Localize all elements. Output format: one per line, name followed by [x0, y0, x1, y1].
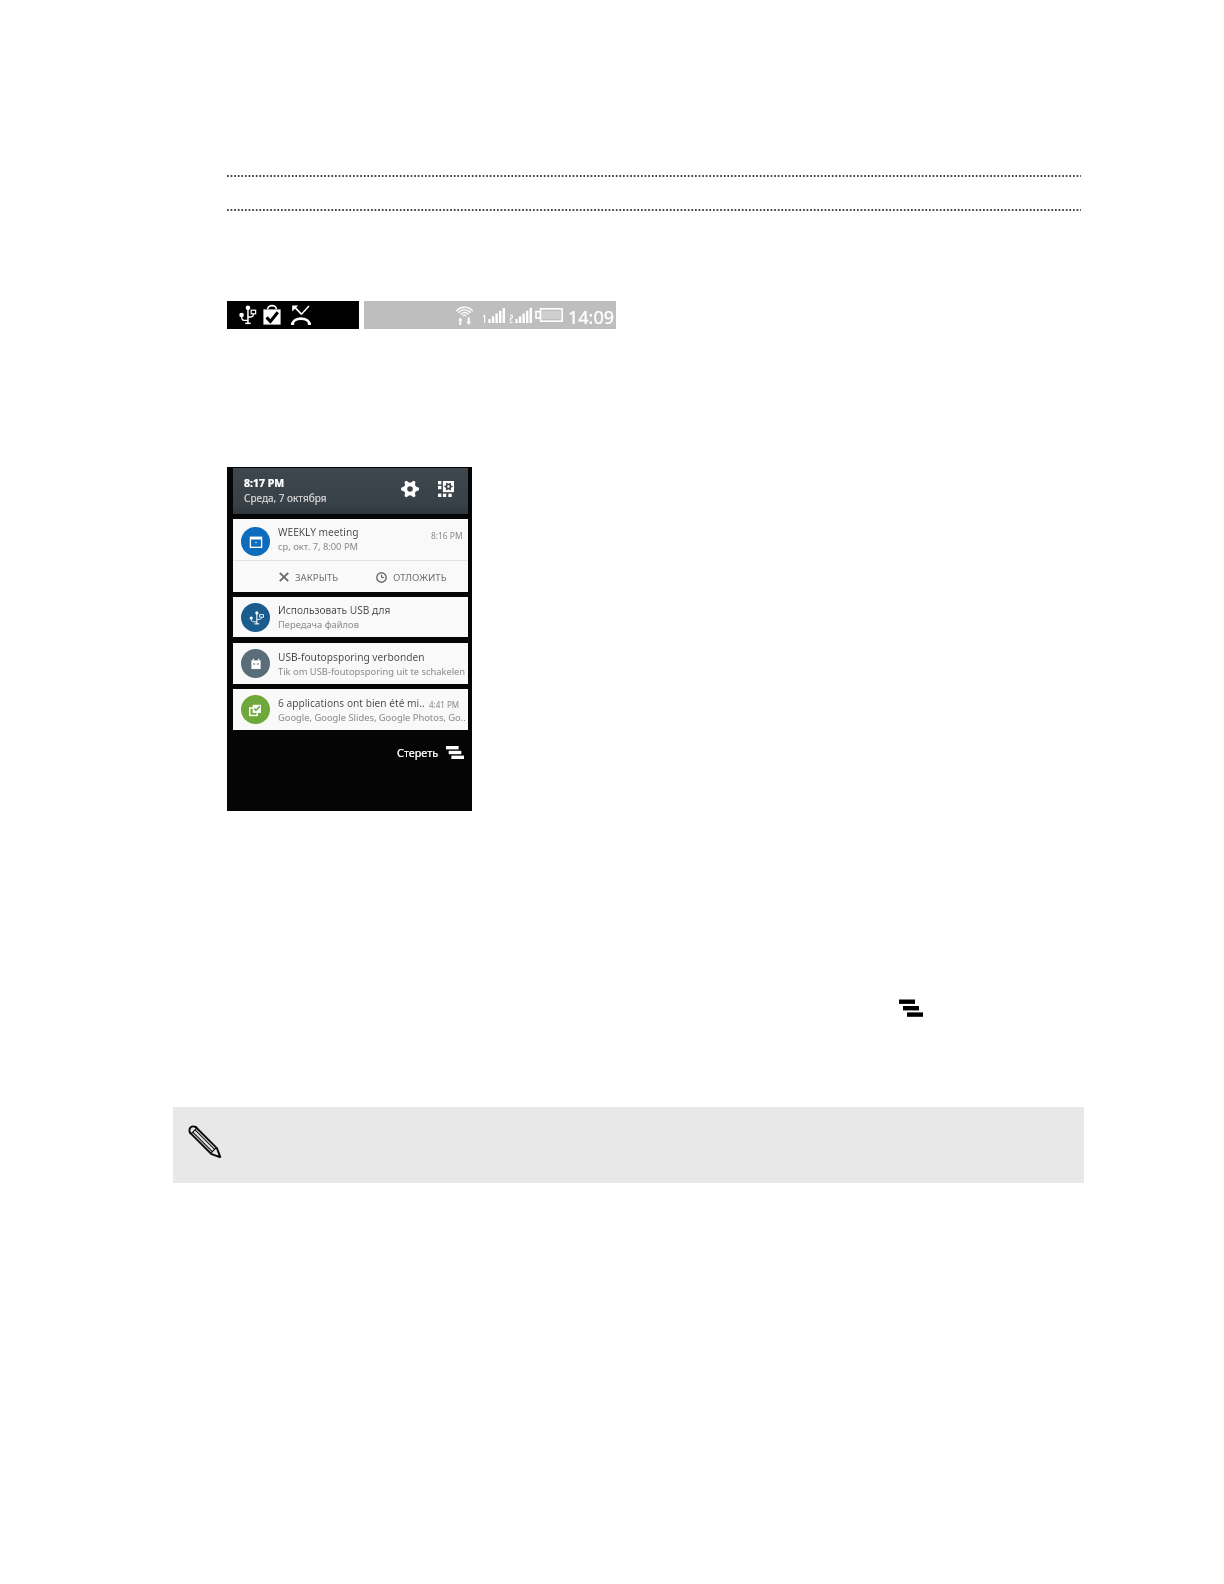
- staticText: Google, Google Slides, Google Photos, Go…: [278, 711, 466, 724]
- staticText: 8:17 PM: [244, 476, 285, 490]
- button[interactable]: WEEKLY meeting: [233, 519, 468, 592]
- other: Note: [182, 1119, 228, 1165]
- button[interactable]: USB-foutopsporing verbonden: [233, 643, 468, 684]
- staticText: 8:16 PM: [431, 530, 463, 541]
- staticText: 4:41 PM: [429, 699, 460, 710]
- staticText: ОТЛОЖИТЬ: [393, 571, 447, 584]
- button[interactable]: 8:17 PM: [233, 468, 468, 514]
- button[interactable]: Clear all notifications: [897, 996, 926, 1020]
- button[interactable]: Settings: [395, 476, 425, 502]
- button[interactable]: ОТЛОЖИТЬ: [376, 565, 447, 589]
- staticText: 14:09: [568, 305, 615, 330]
- staticText: Tik om USB-foutopsporing uit te schakele…: [278, 665, 466, 678]
- staticText: ср, окт. 7, 8:00 PM: [278, 540, 359, 553]
- staticText: ЗАКРЫТЬ: [295, 571, 339, 584]
- button[interactable]: 6 applications ont bien été mi..: [233, 689, 468, 730]
- button[interactable]: ЗАКРЫТЬ: [279, 565, 339, 589]
- button[interactable]: Quick settings: [432, 476, 459, 502]
- staticText: USB-foutopsporing verbonden: [278, 650, 425, 664]
- staticText: Среда, 7 октября: [244, 491, 327, 505]
- staticText: Передача файлов: [278, 618, 359, 631]
- staticText: 6 applications ont bien été mi..: [278, 696, 425, 710]
- button[interactable]: Использовать USB для: [233, 597, 468, 637]
- staticText: Стереть: [397, 745, 439, 760]
- staticText: WEEKLY meeting: [278, 525, 359, 539]
- staticText: Использовать USB для: [278, 603, 391, 617]
- button[interactable]: Стереть: [397, 741, 464, 763]
